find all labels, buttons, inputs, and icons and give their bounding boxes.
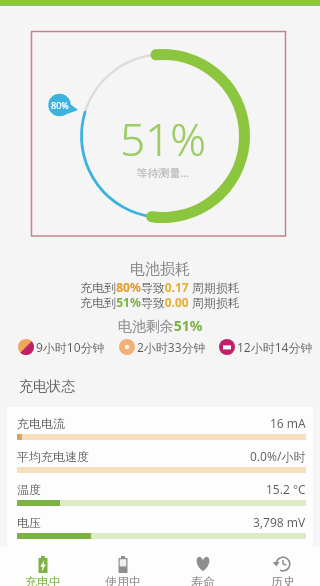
staticText: 12小时14分钟 xyxy=(237,339,313,355)
button[interactable]: 寿命 xyxy=(163,547,243,586)
staticText: 80% xyxy=(51,99,69,111)
staticText: 0.0%/小时 xyxy=(250,448,306,464)
button[interactable]: 充电电流 xyxy=(7,407,313,440)
staticText: 充电中 xyxy=(25,574,61,586)
button[interactable]: 历史 xyxy=(243,547,320,586)
staticText: 3,798 mV xyxy=(253,514,306,530)
staticText: 平均充电速度 xyxy=(17,449,89,464)
button[interactable]: 使用中 xyxy=(83,547,163,586)
staticText: 充电到80%导致0.17 周期损耗 xyxy=(0,279,320,295)
staticText: 电池剩余51% xyxy=(0,316,320,335)
other: 充电中 xyxy=(34,555,52,573)
staticText: 温度 xyxy=(17,482,41,497)
button[interactable]: 电压 xyxy=(7,506,313,539)
staticText: 9小时10分钟 xyxy=(36,339,105,355)
staticText: 寿命 xyxy=(191,574,215,586)
staticText: 2小时33分钟 xyxy=(137,339,206,355)
staticText: 电压 xyxy=(17,515,41,530)
button[interactable]: 平均充电速度 xyxy=(7,440,313,473)
other: 使用中 xyxy=(114,555,132,573)
staticText: 15.2 °C xyxy=(266,481,306,497)
staticText: 16 mA xyxy=(270,415,306,431)
button[interactable]: 温度 xyxy=(7,473,313,506)
staticText: 充电状态 xyxy=(19,378,75,396)
other: 历史 xyxy=(274,555,292,573)
staticText: 51% xyxy=(83,109,243,169)
staticText: 使用中 xyxy=(105,574,141,586)
other: 寿命 xyxy=(194,555,212,573)
staticText: 历史 xyxy=(271,574,295,586)
button[interactable]: 充电中 xyxy=(3,547,83,586)
staticText: 电池损耗 xyxy=(0,260,320,279)
staticText: 充电到51%导致0.00 周期损耗 xyxy=(0,294,320,310)
staticText: 充电电流 xyxy=(17,416,65,431)
staticText: 等待测量... xyxy=(83,165,243,180)
